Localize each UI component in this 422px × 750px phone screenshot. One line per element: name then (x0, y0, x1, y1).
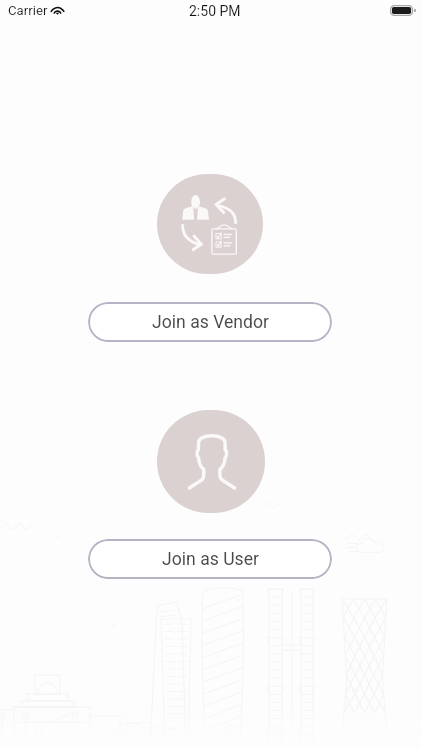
staticText: 2:50 PM (189, 3, 241, 19)
staticText: Join as User (162, 549, 259, 570)
other: Battery (390, 5, 417, 16)
staticText: Join as Vendor (152, 312, 269, 333)
button[interactable]: Join as Vendor (88, 302, 332, 342)
staticText: Carrier (8, 3, 48, 18)
button[interactable]: Join as User (88, 539, 332, 579)
other: Wi-Fi (50, 5, 65, 15)
